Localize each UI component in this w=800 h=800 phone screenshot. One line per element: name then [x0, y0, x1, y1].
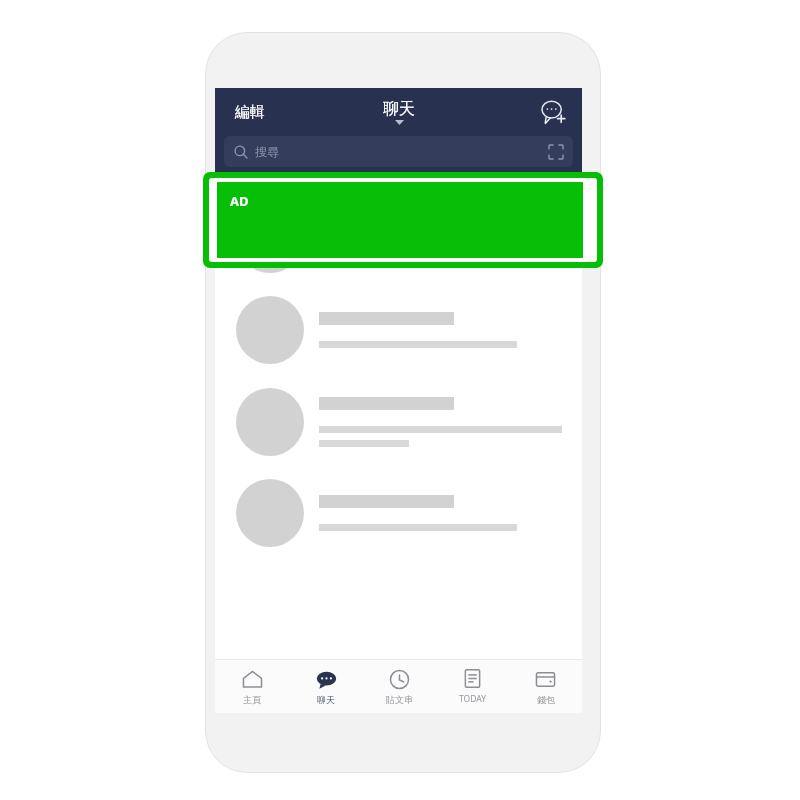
staticText: TODAY [459, 693, 486, 705]
staticText: 搜尋 [255, 144, 279, 159]
button[interactable] [215, 296, 582, 364]
button[interactable]: 編輯 [229, 99, 271, 126]
button[interactable]: New chat [539, 97, 569, 127]
staticText: 錢包 [537, 694, 555, 705]
button[interactable] [215, 479, 582, 547]
staticText: 聊天 [317, 694, 335, 705]
button[interactable]: 錢包 [509, 660, 582, 713]
staticText: 聊天 [383, 99, 415, 119]
staticText: AD [230, 192, 249, 210]
button[interactable]: 搜尋 [224, 136, 573, 167]
button[interactable]: 貼文串 [363, 660, 436, 713]
button[interactable]: TODAY [436, 660, 509, 713]
staticText: 貼文串 [386, 694, 413, 705]
staticText: 編輯 [235, 103, 265, 122]
button[interactable]: 主頁 [215, 660, 289, 713]
button[interactable]: 聊天 [375, 97, 423, 127]
button[interactable]: AD [217, 182, 583, 258]
button[interactable]: 聊天 [289, 660, 363, 713]
button[interactable] [215, 205, 582, 273]
button[interactable] [215, 388, 582, 456]
staticText: 主頁 [243, 694, 261, 705]
